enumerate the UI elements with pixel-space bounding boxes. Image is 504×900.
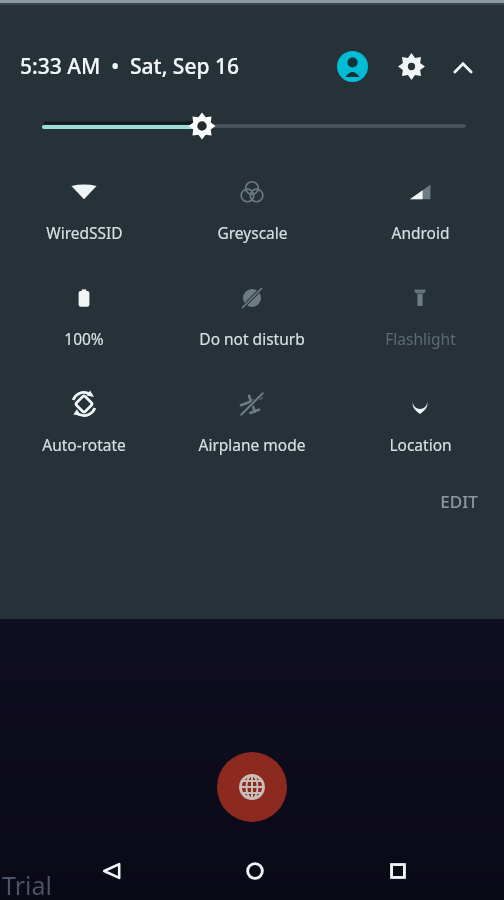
staticText: WiredSSID: [46, 222, 123, 243]
button[interactable]: Home: [226, 842, 284, 900]
button[interactable]: WiredSSID: [0, 170, 168, 243]
button[interactable]: Airplane mode: [168, 382, 336, 455]
button[interactable]: Location: [336, 382, 504, 455]
button[interactable]: Settings: [389, 44, 433, 88]
button[interactable]: Flashlight: [336, 276, 504, 349]
button[interactable]: Greyscale: [168, 170, 336, 243]
button[interactable]: Browser: [217, 752, 287, 822]
button[interactable]: Auto-rotate: [0, 382, 168, 455]
button[interactable]: Do not disturb: [168, 276, 336, 349]
button[interactable]: Brightness: [0, 106, 504, 146]
staticText: 100%: [64, 328, 104, 349]
button[interactable]: User profile: [330, 44, 374, 88]
button[interactable]: 100%: [0, 276, 168, 349]
staticText: Greyscale: [217, 222, 288, 243]
staticText: Do not disturb: [199, 328, 305, 349]
button[interactable]: Collapse: [443, 46, 483, 86]
button[interactable]: Recent apps: [369, 842, 427, 900]
staticText: Location: [389, 434, 452, 455]
button[interactable]: Back: [83, 842, 141, 900]
staticText: Flashlight: [385, 328, 456, 349]
button[interactable]: Android: [336, 170, 504, 243]
button[interactable]: EDIT: [428, 482, 490, 521]
staticText: 5:33 AM • Sat, Sep 16: [20, 52, 239, 81]
staticText: Airplane mode: [198, 434, 306, 455]
staticText: Auto-rotate: [42, 434, 126, 455]
staticText: Trial: [2, 868, 52, 900]
staticText: Android: [391, 222, 450, 243]
staticText: EDIT: [440, 490, 478, 513]
